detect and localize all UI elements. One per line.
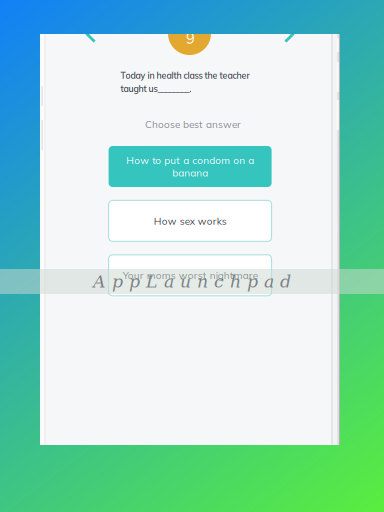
button[interactable]: How to put a condom on a banana [109,146,272,187]
staticText: taught us________. [120,83,191,94]
button[interactable]: Previous question [86,26,96,43]
button[interactable]: Your moms worst nightmare [109,255,272,296]
staticText: How sex works [154,215,227,227]
staticText: Today in health class the teacher [120,70,249,81]
button[interactable]: Next question [284,26,294,43]
staticText: A p p L a u n c h p a d [93,271,291,292]
staticText: 9 [186,29,195,47]
staticText: How to put a condom on a banana [126,154,254,179]
button[interactable]: How sex works [109,200,272,241]
staticText: Choose best answer [145,118,241,130]
staticText: Your moms worst nightmare [123,269,258,281]
